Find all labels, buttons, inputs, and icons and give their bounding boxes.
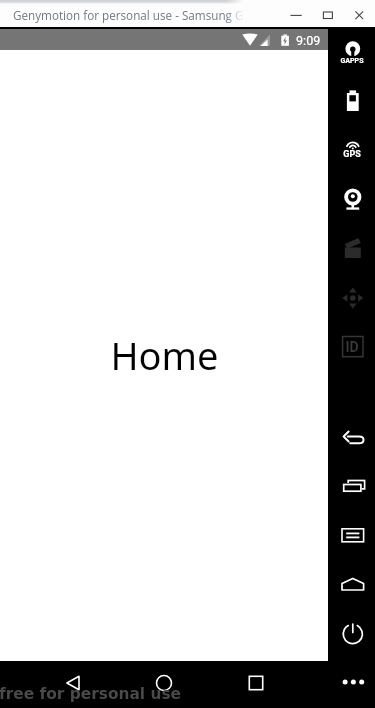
button[interactable]: Identifiers: [328, 334, 375, 360]
button[interactable]: Screen recorder: [328, 236, 375, 260]
button[interactable]: Back: [328, 427, 375, 449]
button[interactable]: Minimize: [283, 2, 309, 26]
staticText: GPS: [343, 149, 361, 160]
button[interactable]: Home: [140, 659, 187, 706]
button[interactable]: Camera: [328, 184, 375, 214]
button[interactable]: Maximize: [315, 2, 341, 26]
button[interactable]: GPS: [328, 137, 375, 161]
staticText: Home: [110, 329, 219, 381]
button[interactable]: Recent apps: [328, 475, 375, 497]
button[interactable]: Home: [328, 573, 375, 595]
button[interactable]: Battery: [328, 86, 375, 114]
button[interactable]: Power: [328, 620, 375, 646]
button[interactable]: Close: [346, 2, 372, 26]
button[interactable]: Virtual sensors: [328, 286, 375, 312]
staticText: GAPPS: [340, 56, 364, 64]
button[interactable]: Menu: [328, 524, 375, 546]
button[interactable]: Back: [49, 659, 96, 706]
button[interactable]: More: [328, 673, 375, 693]
staticText: Genymotion for personal use - Samsung Ga…: [13, 7, 288, 23]
button[interactable]: Recent apps: [232, 659, 279, 706]
button[interactable]: Open GApps: [328, 39, 375, 65]
staticText: ID: [345, 339, 359, 355]
staticText: 9:09: [296, 33, 321, 48]
staticText: free for personal use: [0, 685, 182, 703]
